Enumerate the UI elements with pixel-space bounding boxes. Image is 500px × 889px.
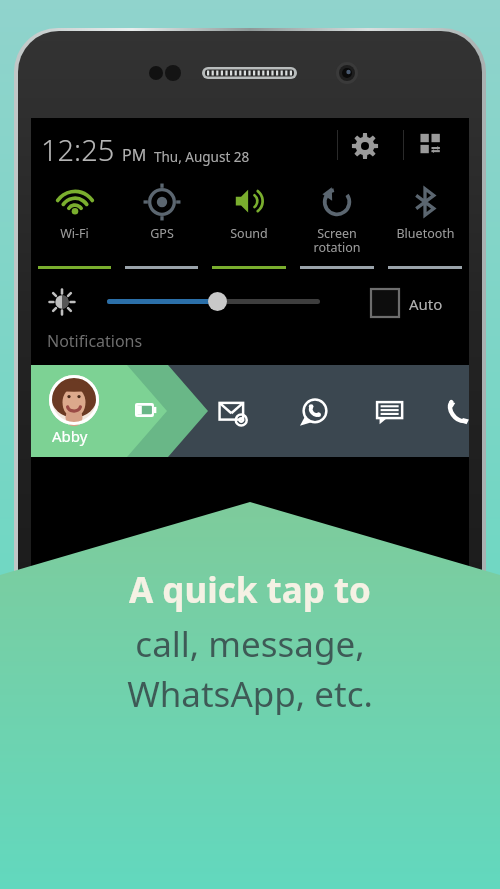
button[interactable]: Email	[215, 393, 253, 431]
button[interactable]: Abby contact photo	[49, 375, 99, 425]
staticText: PM	[122, 144, 147, 166]
staticText: Sound	[230, 225, 268, 242]
button[interactable]: Auto brightness	[371, 289, 399, 317]
button[interactable]: Call	[440, 393, 478, 431]
button[interactable]: Battery	[135, 403, 157, 417]
staticText: GPS	[150, 225, 174, 242]
button[interactable]: Settings	[345, 126, 385, 166]
button[interactable]: Message	[371, 393, 409, 431]
button[interactable]: WhatsApp	[296, 393, 334, 431]
staticText: Abby	[52, 426, 88, 446]
staticText: A quick tap to	[129, 566, 371, 614]
button[interactable]: GPS	[118, 174, 205, 274]
staticText: WhatsApp, etc.	[127, 670, 373, 718]
button[interactable]: Sound	[205, 174, 293, 274]
staticText: Wi-Fi	[60, 225, 89, 242]
button[interactable]: Bluetooth	[381, 174, 469, 274]
staticText: 12:25	[41, 130, 115, 169]
staticText: Notifications	[47, 330, 143, 352]
staticText: Screen rotation	[313, 225, 361, 256]
staticText: call, message,	[135, 620, 365, 668]
staticText: Auto	[409, 294, 443, 314]
staticText: Bluetooth	[396, 225, 455, 242]
button[interactable]: Screen rotation	[293, 174, 381, 274]
button[interactable]: Quick settings grid	[414, 127, 452, 165]
staticText: Thu, August 28	[154, 148, 250, 166]
button[interactable]: Brightness slider	[208, 292, 227, 311]
button[interactable]: Wi-Fi	[31, 174, 118, 274]
